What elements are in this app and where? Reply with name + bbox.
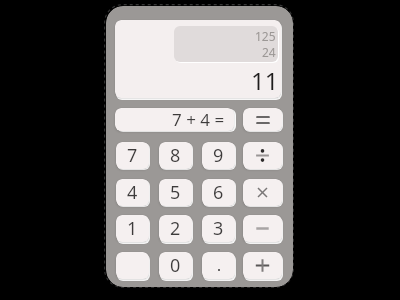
- staticText: 6: [213, 180, 224, 205]
- staticText: 7: [127, 143, 138, 168]
- button[interactable]: Subtract: [243, 215, 282, 242]
- button[interactable]: 0: [159, 252, 192, 279]
- button[interactable]: 7: [116, 142, 149, 169]
- button[interactable]: 6: [202, 179, 235, 206]
- staticText: 9: [213, 143, 224, 168]
- button[interactable]: Add: [243, 252, 282, 279]
- staticText: 5: [170, 180, 181, 205]
- button[interactable]: Divide: [243, 142, 282, 169]
- staticText: 8: [170, 143, 181, 168]
- staticText: 11: [251, 64, 279, 97]
- staticText: 3: [213, 216, 224, 241]
- button[interactable]: Multiply: [243, 179, 282, 206]
- staticText: 0: [170, 253, 181, 278]
- button[interactable]: Clear: [116, 252, 149, 279]
- staticText: 7 + 4 =: [172, 108, 225, 131]
- button[interactable]: 4: [116, 179, 149, 206]
- button[interactable]: 7 + 4 =: [115, 108, 234, 131]
- button[interactable]: Decimal point: [202, 252, 235, 279]
- button[interactable]: Equals: [243, 108, 282, 131]
- button[interactable]: 9: [202, 142, 235, 169]
- staticText: 1: [127, 216, 138, 241]
- button[interactable]: 8: [159, 142, 192, 169]
- button[interactable]: 2: [159, 215, 192, 242]
- button[interactable]: 1: [116, 215, 149, 242]
- staticText: 125: [255, 28, 276, 44]
- staticText: 2: [170, 216, 181, 241]
- staticText: 4: [127, 180, 138, 205]
- button[interactable]: 5: [159, 179, 192, 206]
- button[interactable]: 3: [202, 215, 235, 242]
- staticText: 24: [262, 44, 276, 60]
